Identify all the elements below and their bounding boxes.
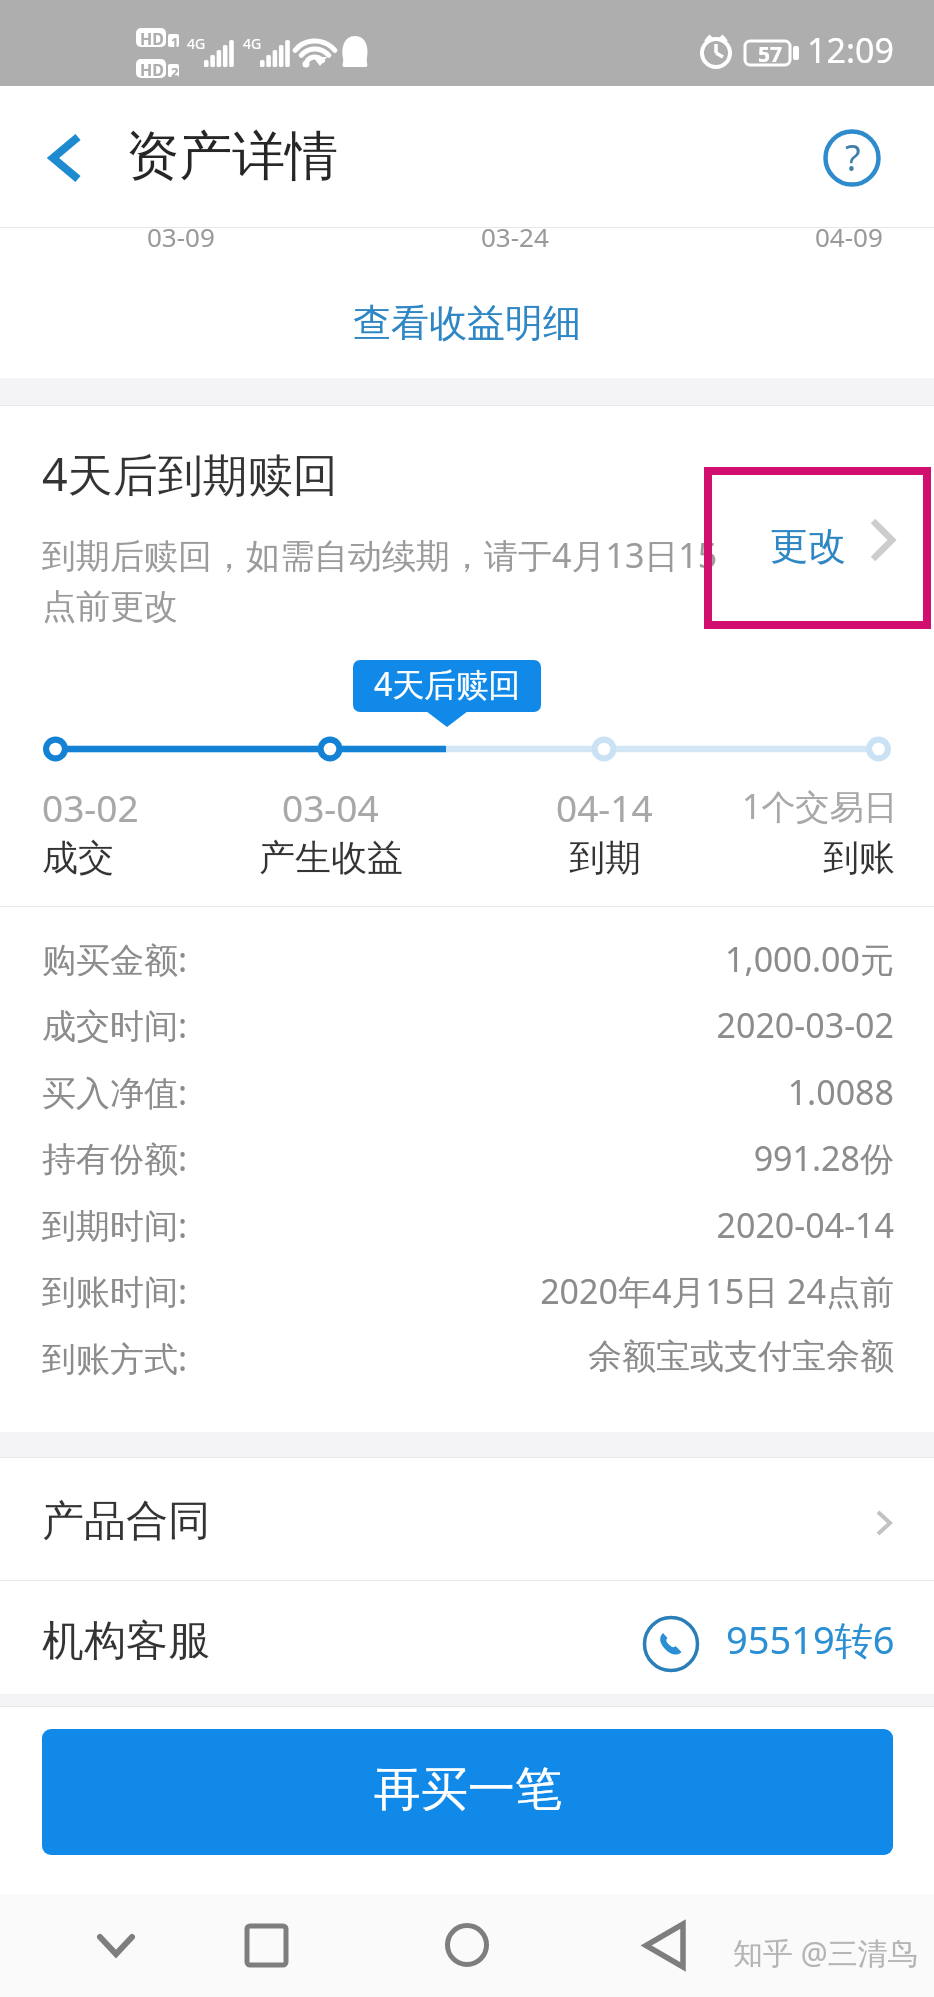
staticText: 03-04 [282, 782, 379, 832]
staticText: 1个交易日 [742, 783, 898, 829]
staticText: 2020-03-02 [400, 1002, 894, 1048]
staticText: 更改 [770, 522, 846, 570]
staticText: 购买金额: [42, 936, 188, 982]
staticText: 成交时间: [42, 1002, 188, 1048]
staticText: 2020年4月15日 24点前 [400, 1268, 894, 1314]
button[interactable]: Home [417, 1896, 517, 1994]
button[interactable]: Help [818, 124, 886, 192]
staticText: 知乎 @三清鸟 [733, 1932, 918, 1973]
button[interactable]: 更改 [704, 467, 931, 629]
staticText: 到账时间: [42, 1268, 188, 1314]
staticText: 机构客服 [42, 1615, 210, 1668]
staticText: 991.28份 [400, 1135, 894, 1181]
staticText: 到期时间: [42, 1202, 188, 1248]
staticText: 产品合同 [42, 1495, 210, 1548]
staticText: 买入净值: [42, 1069, 188, 1115]
staticText: HD [140, 59, 164, 81]
staticText: 产生收益 [259, 835, 403, 880]
button[interactable]: Back [20, 110, 96, 206]
staticText: 4G [187, 34, 206, 53]
button[interactable]: Back [614, 1896, 714, 1994]
staticText: 04-09 [815, 219, 883, 254]
staticText: 查看收益明细 [353, 299, 581, 347]
staticText: ? [845, 133, 861, 182]
staticText: 资产详情 [126, 123, 338, 190]
staticText: 1 [171, 33, 179, 51]
staticText: 持有份额: [42, 1135, 188, 1181]
staticText: 4天后赎回 [374, 662, 521, 706]
staticText: 1,000.00元 [400, 936, 894, 982]
staticText: 余额宝或支付宝余额 [400, 1335, 894, 1378]
button[interactable]: 产品合同 [0, 1458, 934, 1580]
staticText: 到账方式: [42, 1335, 188, 1381]
staticText: 95519转6 [726, 1613, 895, 1665]
staticText: 成交 [42, 835, 114, 880]
staticText: 12:09 [807, 27, 894, 73]
staticText: 再买一笔 [374, 1760, 562, 1819]
staticText: 03-02 [42, 782, 139, 832]
button[interactable]: 机构客服 [0, 1581, 934, 1695]
button[interactable]: 再买一笔 [42, 1729, 893, 1855]
staticText: 到期 [569, 835, 641, 880]
staticText: 57 [758, 40, 783, 69]
staticText: 03-24 [481, 219, 549, 254]
staticText: 2 [171, 63, 179, 81]
button[interactable]: Hide keyboard [66, 1896, 166, 1994]
staticText: HD [140, 28, 164, 50]
staticText: 03-09 [147, 219, 215, 254]
staticText: 到账 [823, 835, 895, 880]
staticText: 4天后到期赎回 [42, 443, 338, 504]
staticText: 1.0088 [400, 1069, 894, 1115]
staticText: 到期后赎回，如需自动续期，请于4月13日15点前更改 [42, 532, 732, 628]
staticText: 04-14 [556, 782, 653, 832]
staticText: 4G [243, 34, 262, 53]
button[interactable]: Recent apps [216, 1896, 316, 1994]
staticText: 2020-04-14 [400, 1202, 894, 1248]
button[interactable]: 查看收益明细 [330, 285, 604, 361]
